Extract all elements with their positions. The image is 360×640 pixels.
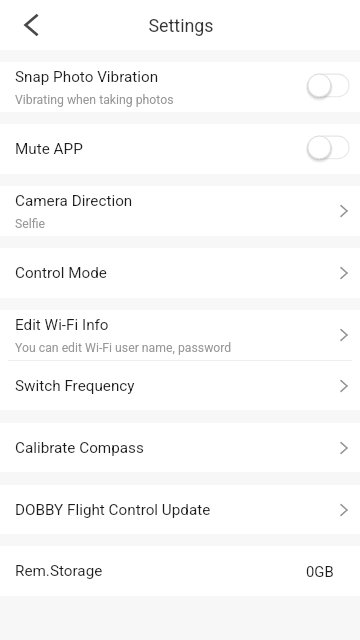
staticText: Rem.Storage xyxy=(15,562,103,580)
staticText: 0GB xyxy=(306,563,334,580)
button[interactable]: Camera Direction xyxy=(0,186,360,236)
button[interactable]: Switch Frequency xyxy=(0,361,360,410)
button[interactable]: Mute APP xyxy=(0,124,360,174)
button[interactable]: Rem.Storage xyxy=(0,546,360,596)
button[interactable]: Control Mode xyxy=(0,248,360,298)
staticText: Snap Photo Vibration xyxy=(15,68,159,86)
staticText: You can edit Wi-Fi user name, password xyxy=(15,341,232,355)
staticText: Control Mode xyxy=(15,264,107,282)
staticText: Calibrate Compass xyxy=(15,439,144,457)
button[interactable]: Back xyxy=(7,0,55,50)
button[interactable]: Toggle xyxy=(302,132,350,166)
button[interactable]: Toggle xyxy=(302,70,350,104)
button[interactable]: Calibrate Compass xyxy=(0,423,360,472)
button[interactable]: Edit Wi-Fi Info xyxy=(0,310,360,360)
staticText: Selfie xyxy=(15,217,46,231)
button[interactable]: Snap Photo Vibration xyxy=(0,62,360,112)
staticText: Settings xyxy=(148,15,214,36)
staticText: Edit Wi-Fi Info xyxy=(15,316,109,334)
button[interactable]: DOBBY Flight Control Update xyxy=(0,485,360,534)
staticText: Camera Direction xyxy=(15,192,133,210)
staticText: Switch Frequency xyxy=(15,377,135,395)
staticText: Vibrating when taking photos xyxy=(15,93,174,107)
staticText: DOBBY Flight Control Update xyxy=(15,501,211,519)
staticText: Mute APP xyxy=(15,140,83,158)
